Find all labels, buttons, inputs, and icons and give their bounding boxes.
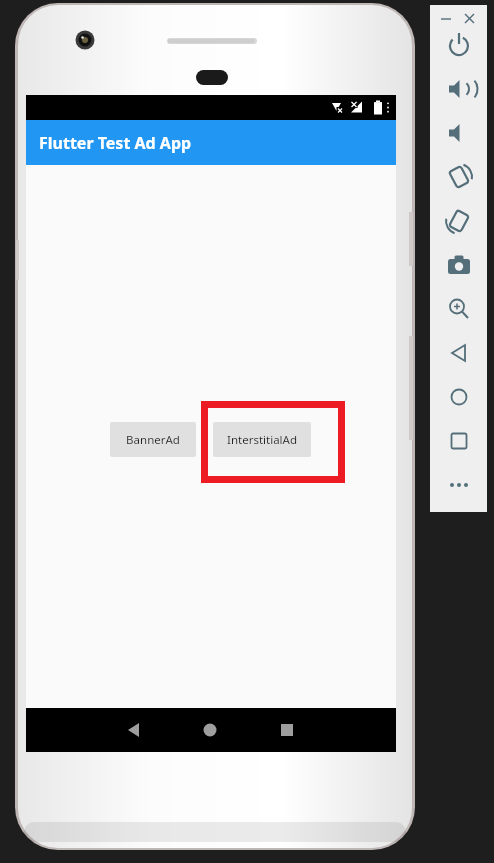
button[interactable]: Volume up bbox=[443, 73, 475, 105]
button[interactable]: Back bbox=[443, 337, 475, 369]
button[interactable]: Home bbox=[181, 712, 241, 748]
button[interactable]: Take screenshot bbox=[443, 249, 475, 281]
button[interactable]: InterstitialAd bbox=[213, 422, 311, 457]
button[interactable]: Overview bbox=[443, 425, 475, 457]
staticText: InterstitialAd bbox=[227, 432, 297, 448]
staticText: BannerAd bbox=[126, 432, 180, 448]
button[interactable]: Rotate right bbox=[443, 205, 475, 237]
button[interactable]: Rotate left bbox=[443, 161, 475, 193]
staticText: Flutter Test Ad App bbox=[39, 132, 192, 154]
button[interactable]: Home bbox=[443, 381, 475, 413]
button[interactable]: Flutter Test Ad App bbox=[26, 120, 396, 165]
button[interactable]: Close bbox=[459, 8, 481, 30]
button[interactable]: More bbox=[443, 469, 475, 501]
button[interactable]: BannerAd bbox=[110, 422, 196, 457]
button[interactable]: Zoom bbox=[443, 293, 475, 325]
button[interactable]: Back bbox=[106, 712, 166, 748]
button[interactable]: Minimize bbox=[436, 8, 458, 30]
button[interactable]: Power bbox=[443, 29, 475, 61]
button[interactable]: Recent apps bbox=[257, 712, 317, 748]
button[interactable]: Volume down bbox=[443, 117, 475, 149]
